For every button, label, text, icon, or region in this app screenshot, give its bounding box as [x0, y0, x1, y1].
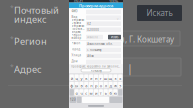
staticText: у: [80, 76, 82, 81]
staticText: ФИО: [71, 9, 77, 13]
staticText: л: [105, 83, 107, 88]
staticText: ю: [114, 90, 117, 96]
staticText: ы: [75, 83, 78, 88]
staticText: Почтовый: [14, 4, 59, 16]
staticText: г: [100, 76, 102, 81]
staticText: б: [109, 90, 111, 96]
button[interactable]: Искать: [108, 35, 121, 39]
staticText: я: [76, 90, 78, 96]
staticText: ч: [80, 90, 82, 96]
staticText: Абая: [87, 54, 94, 58]
staticText: д: [110, 83, 112, 88]
staticText: *: [10, 34, 14, 43]
staticText: з: [114, 76, 116, 81]
staticText: 09:41: [74, 0, 83, 4]
staticText: Г. Кокшетау: [87, 48, 101, 52]
staticText: й: [71, 76, 73, 81]
staticText: х: [119, 76, 121, 81]
staticText: Адрес: [14, 63, 42, 75]
button[interactable]: Искать: [137, 5, 182, 21]
staticText: 020000: [87, 28, 99, 32]
staticText: е: [90, 76, 92, 81]
staticText: Улица: [71, 53, 80, 57]
staticText: ь: [105, 90, 107, 96]
staticText: э: [119, 83, 121, 88]
staticText: я, Г. Кокшетау: [120, 34, 174, 45]
staticText: т: [100, 90, 102, 96]
staticText: *: [10, 3, 14, 12]
staticText: Город: [71, 47, 80, 51]
staticText: щ: [109, 76, 113, 81]
staticText: индекс: [71, 30, 80, 34]
staticText: 100%: [109, 0, 118, 4]
staticText: ш: [104, 76, 108, 81]
staticText: а: [85, 83, 87, 88]
staticText: Вид: [71, 15, 77, 19]
staticText: в: [80, 83, 82, 88]
staticText: Искать: [111, 35, 118, 39]
staticText: н: [95, 76, 97, 81]
staticText: Район: [71, 41, 80, 45]
staticText: Регион: [14, 35, 47, 47]
staticText: |: [127, 61, 133, 75]
staticText: *: [10, 62, 14, 71]
staticText: отправки: [71, 24, 84, 28]
staticText: и: [95, 90, 97, 96]
staticText: Акмолинская обл.: [87, 42, 113, 46]
staticText: KZ: [87, 22, 91, 26]
staticText: о: [100, 83, 102, 88]
staticText: ц: [76, 76, 78, 81]
staticText: 123: [70, 98, 76, 101]
staticText: м: [90, 90, 93, 96]
staticText: ж: [114, 83, 117, 88]
staticText: Проверка адреса: [79, 3, 113, 8]
staticText: отправки: [71, 18, 84, 22]
staticText: Кокшетау: [90, 69, 101, 72]
staticText: Страна: [71, 21, 80, 25]
staticText: Регион: [71, 33, 81, 37]
staticText: ф: [70, 83, 73, 88]
staticText: к: [85, 76, 87, 81]
staticText: выбор: [71, 36, 81, 40]
staticText: Почтовый: [71, 27, 85, 31]
staticText: индекс: [14, 13, 47, 25]
staticText: п: [90, 83, 92, 88]
staticText: Акмола: [87, 35, 97, 39]
staticText: ⌄: [116, 16, 119, 20]
staticText: Искать: [146, 8, 172, 18]
staticText: р: [95, 83, 97, 88]
staticText: Дом: [71, 59, 77, 63]
staticText: с: [85, 90, 87, 96]
staticText: Проверьте, корректно ли заполнен адрес: [71, 65, 121, 68]
